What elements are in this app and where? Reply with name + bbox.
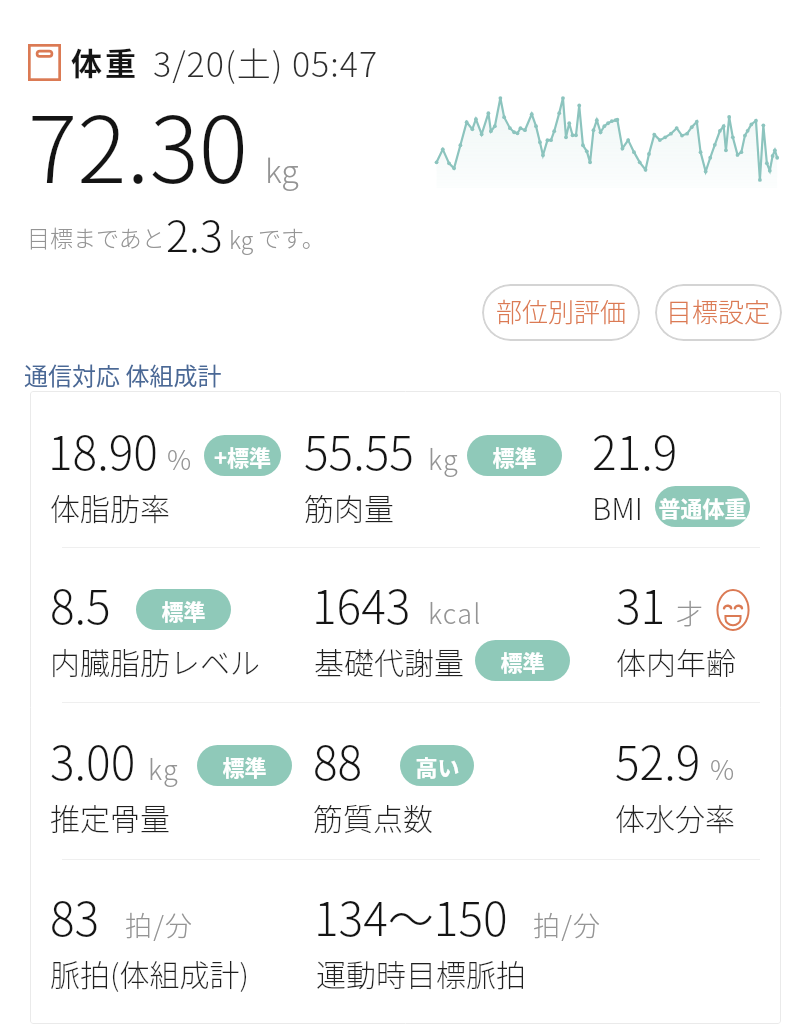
staticText: kg (428, 439, 459, 478)
staticText: 体脂肪率 (50, 485, 170, 528)
staticText: 31 (616, 571, 666, 638)
staticText: 部位別評価 (496, 292, 627, 330)
staticText: 筋肉量 (304, 485, 394, 528)
staticText: 標準 (222, 750, 267, 782)
staticText: 体水分率 (615, 795, 735, 838)
staticText: 目標まであと (27, 220, 165, 253)
staticText: 55.55 (304, 417, 414, 484)
button[interactable]: 目標設定 (655, 284, 782, 341)
staticText: 目標設定 (666, 292, 771, 330)
staticText: 普通体重 (658, 491, 747, 523)
button[interactable] (30, 391, 781, 547)
button[interactable] (30, 547, 781, 702)
other: Mood (715, 589, 751, 631)
staticText: kg (229, 222, 254, 255)
staticText: kcal (428, 593, 482, 632)
button[interactable] (30, 702, 781, 859)
staticText: 拍/分 (533, 905, 602, 944)
staticText: 高い (415, 750, 460, 782)
staticText: kg (265, 146, 299, 192)
button[interactable]: 部位別評価 (482, 284, 640, 341)
staticText: 52.9 (615, 727, 701, 794)
staticText: 基礎代謝量 (314, 639, 464, 682)
staticText: 体重 (71, 39, 139, 84)
staticText: 72.30 (28, 76, 248, 209)
staticText: です。 (258, 220, 325, 253)
staticText: 3.00 (50, 727, 136, 794)
staticText: 3/20(土) 05:47 (153, 38, 379, 87)
staticText: 134〜150 (314, 883, 508, 950)
staticText: 18.90 (48, 417, 158, 484)
staticText: 運動時目標脈拍 (316, 951, 526, 994)
staticText: 拍/分 (125, 905, 194, 944)
staticText: 83 (50, 883, 100, 950)
staticText: kg (148, 749, 179, 788)
staticText: 標準 (500, 645, 545, 677)
staticText: 1643 (312, 571, 411, 638)
staticText: 21.9 (592, 417, 678, 484)
staticText: 体内年齢 (616, 639, 736, 682)
staticText: 脈拍(体組成計) (50, 951, 249, 994)
button[interactable] (30, 859, 781, 1024)
staticText: 8.5 (50, 571, 111, 638)
staticText: 通信対応 体組成計 (24, 357, 222, 392)
staticText: 標準 (161, 594, 206, 626)
staticText: 内臓脂肪レベル (50, 639, 260, 682)
staticText: BMI (592, 485, 644, 528)
button[interactable]: Weight scale (28, 44, 61, 81)
staticText: % (167, 439, 193, 478)
staticText: 2.3 (166, 202, 223, 264)
staticText: 才 (676, 593, 705, 632)
staticText: +標準 (214, 440, 271, 472)
staticText: 筋質点数 (313, 795, 433, 838)
staticText: 標準 (492, 440, 537, 472)
staticText: % (710, 749, 736, 788)
staticText: 88 (313, 727, 363, 794)
staticText: 推定骨量 (50, 795, 170, 838)
